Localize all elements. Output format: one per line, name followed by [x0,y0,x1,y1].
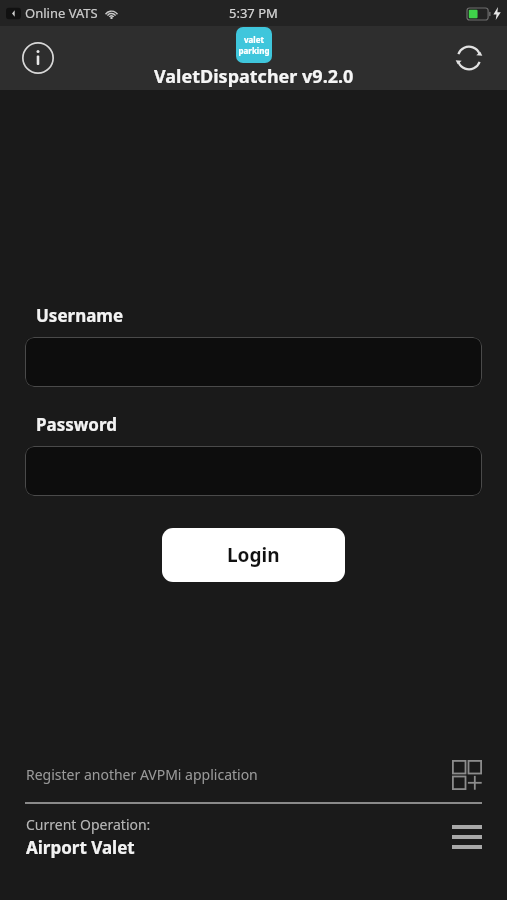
button[interactable]: Refresh [447,36,491,80]
button[interactable]: Register another AVPMi application [0,747,507,802]
staticText: ValetDispatcher v9.2.0 [154,64,354,89]
staticText: Airport Valet [26,836,135,859]
button[interactable] [25,337,482,387]
staticText: 5:37 PM [229,4,278,22]
other: Add application [449,757,485,793]
staticText: parking [238,45,270,56]
staticText: Online VATS [25,4,98,22]
button[interactable]: Current Operation: [0,804,507,870]
staticText: Current Operation: [26,815,151,834]
button[interactable]: Login [162,528,345,582]
other: Menu [449,819,485,855]
staticText: Register another AVPMi application [26,765,449,784]
staticText: Username [36,304,124,327]
staticText: Password [36,413,117,436]
button[interactable] [25,446,482,496]
staticText: valet [244,34,264,45]
button[interactable]: Information [18,38,58,78]
staticText: Login [227,542,280,568]
